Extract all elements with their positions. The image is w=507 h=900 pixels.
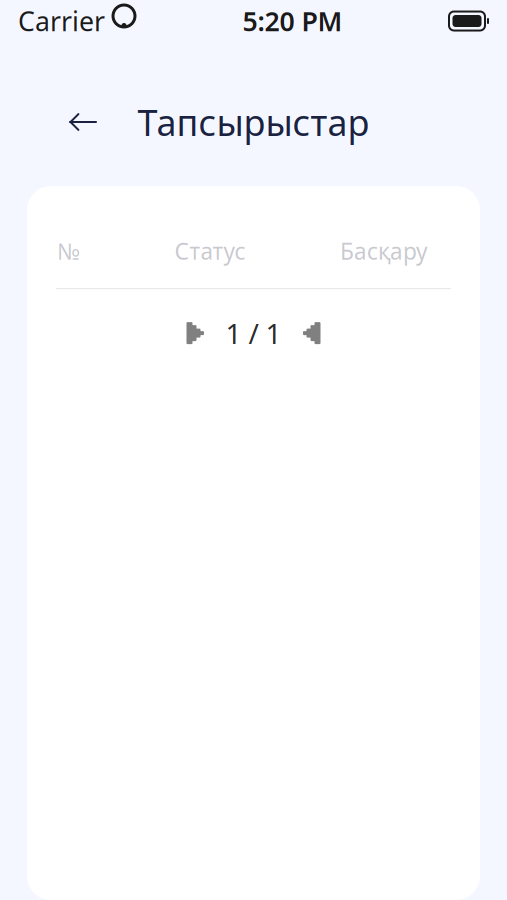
staticText: Carrier <box>18 3 105 39</box>
staticText: Тапсырыстар <box>137 98 369 146</box>
staticText: Басқару <box>340 236 428 266</box>
staticText: 1 / 1 <box>225 314 281 352</box>
button[interactable]: Next page <box>290 314 332 352</box>
staticText: Статус <box>174 236 245 266</box>
staticText: 5:20 PM <box>242 3 342 39</box>
button[interactable]: Previous page <box>174 314 216 352</box>
staticText: № <box>57 236 80 266</box>
button[interactable]: Back <box>57 96 109 148</box>
